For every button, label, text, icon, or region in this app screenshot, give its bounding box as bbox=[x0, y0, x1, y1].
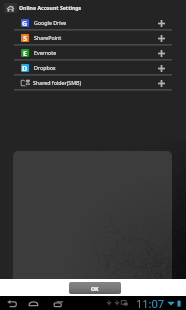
button[interactable]: Add account bbox=[156, 78, 166, 88]
staticText: SharePoint bbox=[34, 34, 62, 41]
button[interactable]: Add account bbox=[156, 18, 166, 28]
staticText: D bbox=[22, 64, 28, 72]
button[interactable]: Recent apps bbox=[52, 297, 65, 310]
button[interactable]: Shared folder(SMB) bbox=[0, 76, 186, 91]
staticText: Online Account Settings bbox=[19, 4, 82, 11]
button[interactable]: D bbox=[0, 61, 186, 76]
staticText: G bbox=[22, 19, 28, 27]
button[interactable]: E bbox=[0, 46, 186, 61]
button[interactable]: G bbox=[0, 16, 186, 31]
staticText: Google Drive bbox=[34, 19, 67, 26]
button[interactable]: Add account bbox=[156, 33, 166, 43]
button[interactable]: Add account bbox=[156, 48, 166, 58]
staticText: E bbox=[23, 49, 27, 57]
staticText: Evernote bbox=[34, 49, 57, 56]
staticText: 11:07 bbox=[136, 296, 165, 310]
button[interactable]: Add account bbox=[156, 63, 166, 73]
button[interactable]: OK bbox=[69, 282, 121, 294]
button[interactable]: S bbox=[0, 31, 186, 46]
staticText: Dropbox bbox=[34, 64, 56, 71]
button[interactable]: Up bbox=[4, 3, 17, 13]
button[interactable]: Back bbox=[5, 297, 18, 310]
staticText: S bbox=[23, 34, 27, 42]
button[interactable]: Home bbox=[27, 297, 40, 310]
staticText: OK bbox=[91, 285, 99, 292]
staticText: Shared folder(SMB) bbox=[33, 79, 82, 86]
